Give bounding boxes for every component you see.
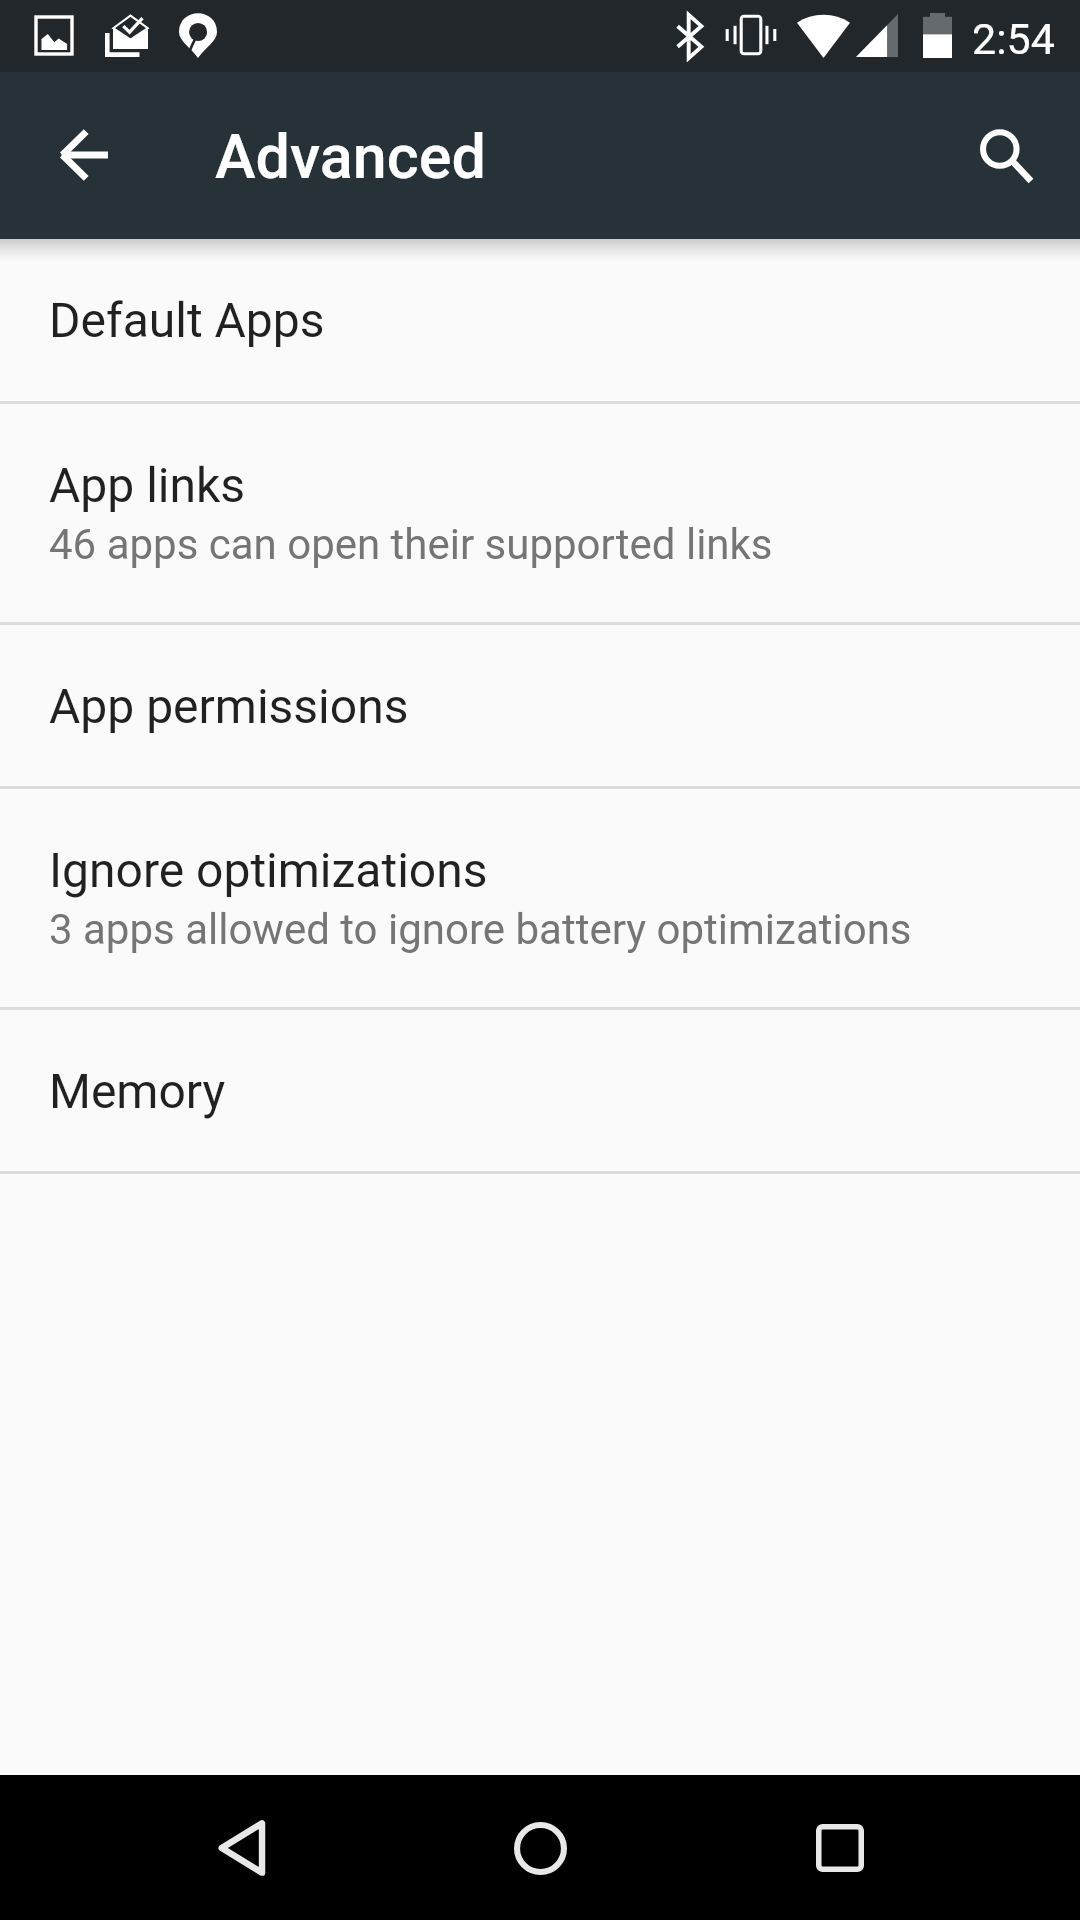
staticText: App permissions [49,678,409,734]
staticText: 46 apps can open their supported links [49,520,773,569]
button[interactable]: Memory [0,1010,1080,1171]
button[interactable]: Ignore optimizations [0,789,1080,1007]
staticText: Default Apps [49,292,325,348]
button[interactable]: App links [0,404,1080,622]
button[interactable]: App permissions [0,625,1080,786]
staticText: Memory [49,1063,226,1119]
staticText: 2:54 [972,14,1055,64]
button[interactable]: Back [36,107,132,203]
staticText: 3 apps allowed to ignore battery optimiz… [49,905,912,954]
staticText: App links [49,457,246,513]
button[interactable]: Search [958,107,1054,203]
button[interactable]: Back [183,1788,303,1908]
button[interactable]: Recents [780,1788,900,1908]
staticText: Advanced [215,121,486,192]
button[interactable]: Home [480,1788,600,1908]
staticText: Ignore optimizations [49,842,488,898]
button[interactable]: Default Apps [0,239,1080,401]
